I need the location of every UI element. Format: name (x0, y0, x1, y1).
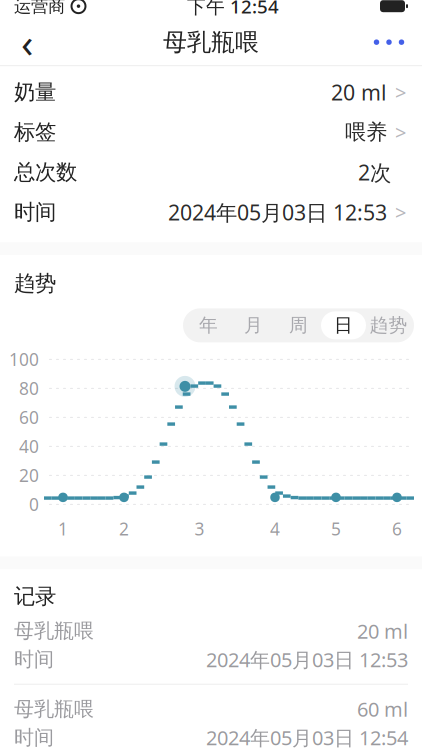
staticText: 时间 (14, 647, 54, 672)
button[interactable]: 年 (186, 311, 231, 339)
button[interactable]: 更多 (360, 20, 418, 64)
staticText: ‹ (21, 16, 33, 69)
staticText: 时间 (14, 725, 54, 750)
button[interactable]: 母乳瓶喂 (0, 612, 422, 679)
staticText: 周 (289, 314, 308, 337)
staticText: 总次数 (14, 159, 77, 185)
staticText: 下午 12:54 (187, 0, 279, 19)
staticText: 2024年05月03日 12:53 (168, 198, 387, 226)
staticText: 60 ml (357, 696, 408, 722)
staticText: 80 (19, 377, 39, 400)
staticText: 3 (194, 517, 204, 540)
staticText: 运营商 (14, 0, 65, 17)
button[interactable]: 总次数 (0, 152, 422, 192)
staticText: 6 (392, 517, 402, 540)
staticText: 趋势 (369, 314, 407, 337)
staticText: 20 ml (357, 618, 408, 644)
staticText: 年 (199, 314, 218, 337)
button[interactable]: 周 (276, 311, 321, 339)
button[interactable]: 标签 (0, 112, 422, 152)
staticText: 2次 (358, 158, 391, 186)
staticText: 2024年05月03日 12:53 (206, 646, 408, 673)
staticText: 日 (334, 314, 353, 337)
staticText: 100 (9, 348, 39, 371)
staticText: 标签 (14, 119, 56, 145)
staticText: > (395, 79, 406, 105)
staticText: 60 (19, 406, 39, 429)
button[interactable]: 返回 (4, 20, 50, 64)
staticText: 奶量 (14, 79, 56, 105)
button[interactable]: 时间 (0, 192, 422, 232)
staticText: 趋势 (14, 270, 56, 296)
button[interactable]: 母乳瓶喂 (0, 690, 422, 750)
button[interactable]: 趋势 (366, 311, 411, 339)
button[interactable]: 奶量 (0, 72, 422, 112)
staticText: 20 (19, 464, 39, 487)
staticText: 0 (29, 493, 39, 516)
staticText: 20 ml (331, 78, 387, 106)
staticText: 月 (244, 314, 263, 337)
staticText: 母乳瓶喂 (14, 619, 94, 643)
button[interactable]: 日 (321, 311, 366, 339)
staticText: 1 (58, 517, 68, 540)
staticText: 母乳瓶喂 (163, 27, 259, 57)
button[interactable]: 月 (231, 311, 276, 339)
staticText: 母乳瓶喂 (14, 697, 94, 721)
staticText: > (395, 119, 406, 145)
staticText: 时间 (14, 199, 56, 225)
staticText: 喂养 (345, 119, 387, 145)
staticText: 2024年05月03日 12:54 (206, 724, 408, 750)
staticText: 2 (119, 517, 129, 540)
staticText: 4 (270, 517, 280, 540)
staticText: 记录 (14, 583, 56, 610)
staticText: 5 (331, 517, 341, 540)
staticText: 40 (19, 435, 39, 458)
staticText: > (395, 199, 406, 225)
